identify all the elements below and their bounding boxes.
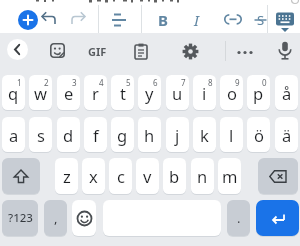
button[interactable] (72, 200, 96, 236)
button[interactable] (50, 43, 65, 59)
button[interactable]: y (138, 75, 161, 110)
button[interactable]: . (227, 200, 250, 236)
button[interactable]: I (187, 9, 205, 31)
button[interactable]: ö (247, 117, 270, 152)
button[interactable]: ä (275, 117, 298, 152)
staticText: I (194, 10, 199, 30)
button[interactable] (224, 14, 242, 25)
staticText: ä (282, 124, 292, 146)
button[interactable]: t (111, 75, 134, 110)
button[interactable] (256, 200, 299, 236)
staticText: t (120, 82, 126, 104)
button[interactable]: p (247, 75, 270, 110)
button[interactable]: n (191, 158, 214, 194)
button[interactable]: a (2, 117, 25, 152)
button[interactable]: q (2, 75, 25, 110)
button[interactable]: S (252, 9, 269, 31)
staticText: 8 (208, 77, 213, 88)
staticText: , (54, 209, 58, 227)
button[interactable]: w (29, 75, 52, 110)
staticText: m (222, 165, 238, 187)
staticText: 1 (17, 77, 22, 88)
button[interactable]: k (193, 117, 216, 152)
button[interactable]: j (166, 117, 189, 152)
button[interactable]: l (220, 117, 243, 152)
button[interactable]: d (57, 117, 80, 152)
button[interactable]: , (44, 200, 67, 236)
button[interactable]: z (55, 158, 78, 194)
staticText: h (144, 124, 155, 146)
button[interactable]: h (138, 117, 161, 152)
staticText: w (34, 82, 47, 104)
staticText: a (9, 124, 19, 146)
button[interactable] (182, 43, 199, 60)
staticText: k (200, 124, 209, 146)
button[interactable]: f (84, 117, 107, 152)
button[interactable] (18, 10, 38, 30)
button[interactable] (236, 50, 254, 55)
button[interactable]: r (84, 75, 107, 110)
button[interactable] (134, 43, 148, 60)
staticText: g (117, 124, 128, 146)
button[interactable]: x (82, 158, 105, 194)
button[interactable]: v (136, 158, 159, 194)
button[interactable]: å (275, 75, 298, 110)
staticText: å (282, 82, 292, 104)
button[interactable]: GIF (86, 43, 109, 59)
staticText: GIF (88, 44, 107, 59)
button[interactable]: i (193, 75, 216, 110)
button[interactable] (277, 41, 293, 61)
staticText: e (64, 82, 74, 104)
staticText: z (63, 165, 71, 187)
staticText: B (158, 10, 168, 30)
staticText: q (8, 82, 19, 104)
button[interactable]: s (29, 117, 52, 152)
button[interactable] (40, 12, 56, 27)
staticText: o (227, 82, 237, 104)
staticText: p (253, 82, 264, 104)
staticText: j (175, 124, 180, 146)
button[interactable]: c (109, 158, 132, 194)
button[interactable] (2, 158, 40, 194)
staticText: ?123 (8, 210, 33, 226)
staticText: 6 (153, 77, 158, 88)
staticText: i (202, 82, 207, 104)
button[interactable]: B (153, 9, 172, 31)
staticText: ö (254, 124, 264, 146)
staticText: s (37, 124, 45, 146)
staticText: 4 (99, 77, 104, 88)
staticText: f (93, 124, 99, 146)
button[interactable] (258, 158, 298, 194)
staticText: n (197, 165, 208, 187)
staticText: . (237, 209, 241, 227)
staticText: r (92, 82, 99, 104)
staticText: 3 (72, 77, 77, 88)
button[interactable]: b (163, 158, 186, 194)
staticText: y (145, 82, 154, 104)
staticText: b (169, 165, 180, 187)
staticText: 2 (44, 77, 49, 88)
staticText: u (172, 82, 183, 104)
staticText: 5 (126, 77, 131, 88)
button[interactable]: g (111, 117, 134, 152)
staticText: l (229, 124, 234, 146)
button[interactable]: e (57, 75, 80, 110)
staticText: d (63, 124, 74, 146)
button[interactable]: o (220, 75, 243, 110)
staticText: 0 (262, 77, 267, 88)
button[interactable] (111, 13, 127, 27)
button[interactable] (7, 39, 28, 60)
staticText: 7 (181, 77, 186, 88)
staticText: v (143, 165, 152, 187)
staticText: c (117, 165, 125, 187)
button[interactable]: ?123 (2, 200, 38, 236)
button[interactable] (274, 11, 296, 33)
staticText: S (257, 11, 265, 29)
staticText: 9 (235, 77, 240, 88)
staticText: x (89, 165, 98, 187)
button[interactable] (71, 12, 87, 27)
button[interactable]: m (218, 158, 241, 194)
button[interactable]: u (166, 75, 189, 110)
